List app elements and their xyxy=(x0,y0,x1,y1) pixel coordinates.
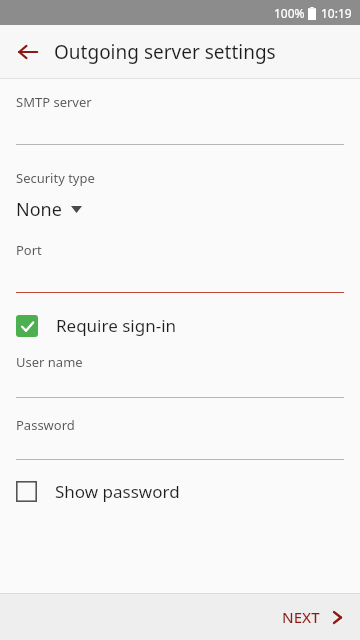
staticText: Show password xyxy=(55,480,180,503)
staticText: Security type xyxy=(16,169,95,187)
staticText: User name xyxy=(16,353,83,371)
staticText: SMTP server xyxy=(16,93,92,111)
button[interactable]: Back xyxy=(8,32,48,72)
staticText: Password xyxy=(16,416,75,434)
button[interactable]: Require sign-in xyxy=(0,311,360,340)
button[interactable]: None xyxy=(0,195,360,224)
staticText: None xyxy=(16,197,62,222)
staticText: Outgoing server settings xyxy=(54,39,276,65)
button[interactable]: NEXT xyxy=(264,597,360,637)
staticText: NEXT xyxy=(282,607,320,627)
staticText: 10:19 xyxy=(321,5,352,21)
staticText: 100% xyxy=(274,5,305,21)
button[interactable]: Show password xyxy=(0,477,360,506)
staticText: Port xyxy=(16,241,42,259)
staticText: Require sign-in xyxy=(56,314,177,337)
